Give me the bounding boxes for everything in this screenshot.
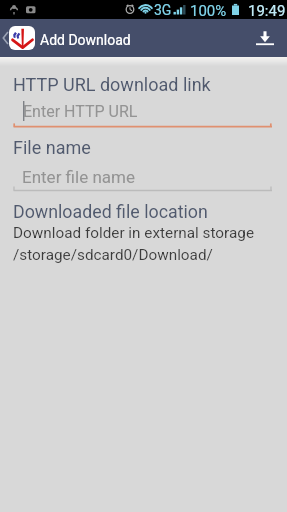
staticText: 100%	[190, 2, 227, 20]
staticText: Downloaded file location	[13, 201, 208, 222]
button[interactable]: Add Download	[9, 19, 131, 57]
button[interactable]: Enter file name	[13, 163, 272, 191]
staticText: HTTP URL download link	[13, 74, 211, 95]
staticText: File name	[13, 137, 91, 158]
staticText: 19:49	[248, 2, 286, 20]
staticText: Enter file name	[22, 167, 135, 187]
staticText: Add Download	[40, 32, 131, 48]
staticText: Enter HTTP URL	[23, 102, 138, 121]
button[interactable]: Download	[243, 19, 287, 57]
button[interactable]: Downloaded file location	[0, 196, 287, 266]
button[interactable]: Navigate up	[0, 19, 10, 57]
staticText: 3G	[154, 2, 172, 18]
staticText: Download folder in external storage	[13, 224, 254, 242]
staticText: /storage/sdcard0/Download/	[13, 246, 213, 264]
button[interactable]: Enter HTTP URL	[13, 97, 272, 125]
